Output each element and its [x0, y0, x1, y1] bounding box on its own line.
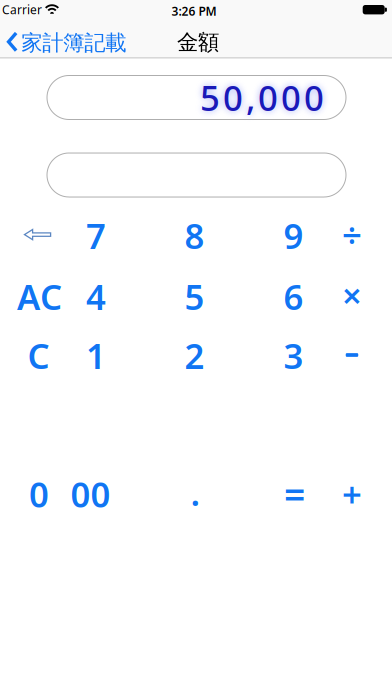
button[interactable]: AC — [4, 272, 74, 320]
staticText: 5 0 , 0 0 0 — [200, 74, 324, 120]
button[interactable]: 3 — [258, 331, 328, 379]
staticText: 1 — [86, 332, 106, 378]
button[interactable]: 6 — [258, 272, 328, 320]
staticText: C — [27, 332, 49, 378]
staticText: 3:26 PM — [171, 3, 216, 19]
staticText: 5 — [184, 273, 204, 319]
staticText: 7 — [86, 212, 106, 258]
button[interactable]: 0 — [4, 470, 74, 518]
button[interactable]: 1 — [61, 331, 131, 379]
button[interactable]: . — [160, 468, 230, 516]
staticText: 8 — [184, 212, 204, 258]
button[interactable]: C — [3, 331, 73, 379]
button[interactable]: 7 — [61, 211, 131, 259]
staticText: = — [284, 469, 305, 519]
button[interactable] — [47, 153, 346, 197]
staticText: Carrier — [2, 1, 42, 17]
staticText: 0 — [29, 471, 49, 517]
button[interactable]: 5 — [159, 272, 229, 320]
button[interactable]: + — [317, 470, 387, 518]
button[interactable] — [8, 213, 68, 257]
button[interactable]: 4 — [61, 272, 131, 320]
button[interactable]: 5 0 , 0 0 0 — [47, 75, 346, 119]
staticText: 金額 — [177, 29, 219, 55]
button[interactable]: 家計簿記載 — [7, 26, 126, 58]
staticText: 9 — [283, 212, 303, 258]
staticText: + — [342, 471, 362, 517]
staticText: ÷ — [342, 211, 362, 257]
button[interactable] — [317, 331, 387, 379]
button[interactable]: 2 — [159, 331, 229, 379]
button[interactable]: × — [317, 271, 387, 319]
staticText: . — [190, 469, 200, 515]
staticText: AC — [17, 273, 62, 319]
button[interactable]: 8 — [159, 211, 229, 259]
staticText: 家計簿記載 — [21, 30, 126, 56]
staticText: × — [342, 272, 362, 318]
staticText: 3 — [283, 332, 303, 378]
button[interactable]: ÷ — [317, 210, 387, 258]
button[interactable]: = — [259, 470, 329, 518]
staticText: 4 — [86, 273, 106, 319]
staticText: 00 — [70, 471, 110, 517]
button[interactable]: 9 — [258, 211, 328, 259]
button[interactable]: 00 — [55, 470, 125, 518]
staticText: 2 — [184, 332, 204, 378]
staticText: 6 — [283, 273, 303, 319]
